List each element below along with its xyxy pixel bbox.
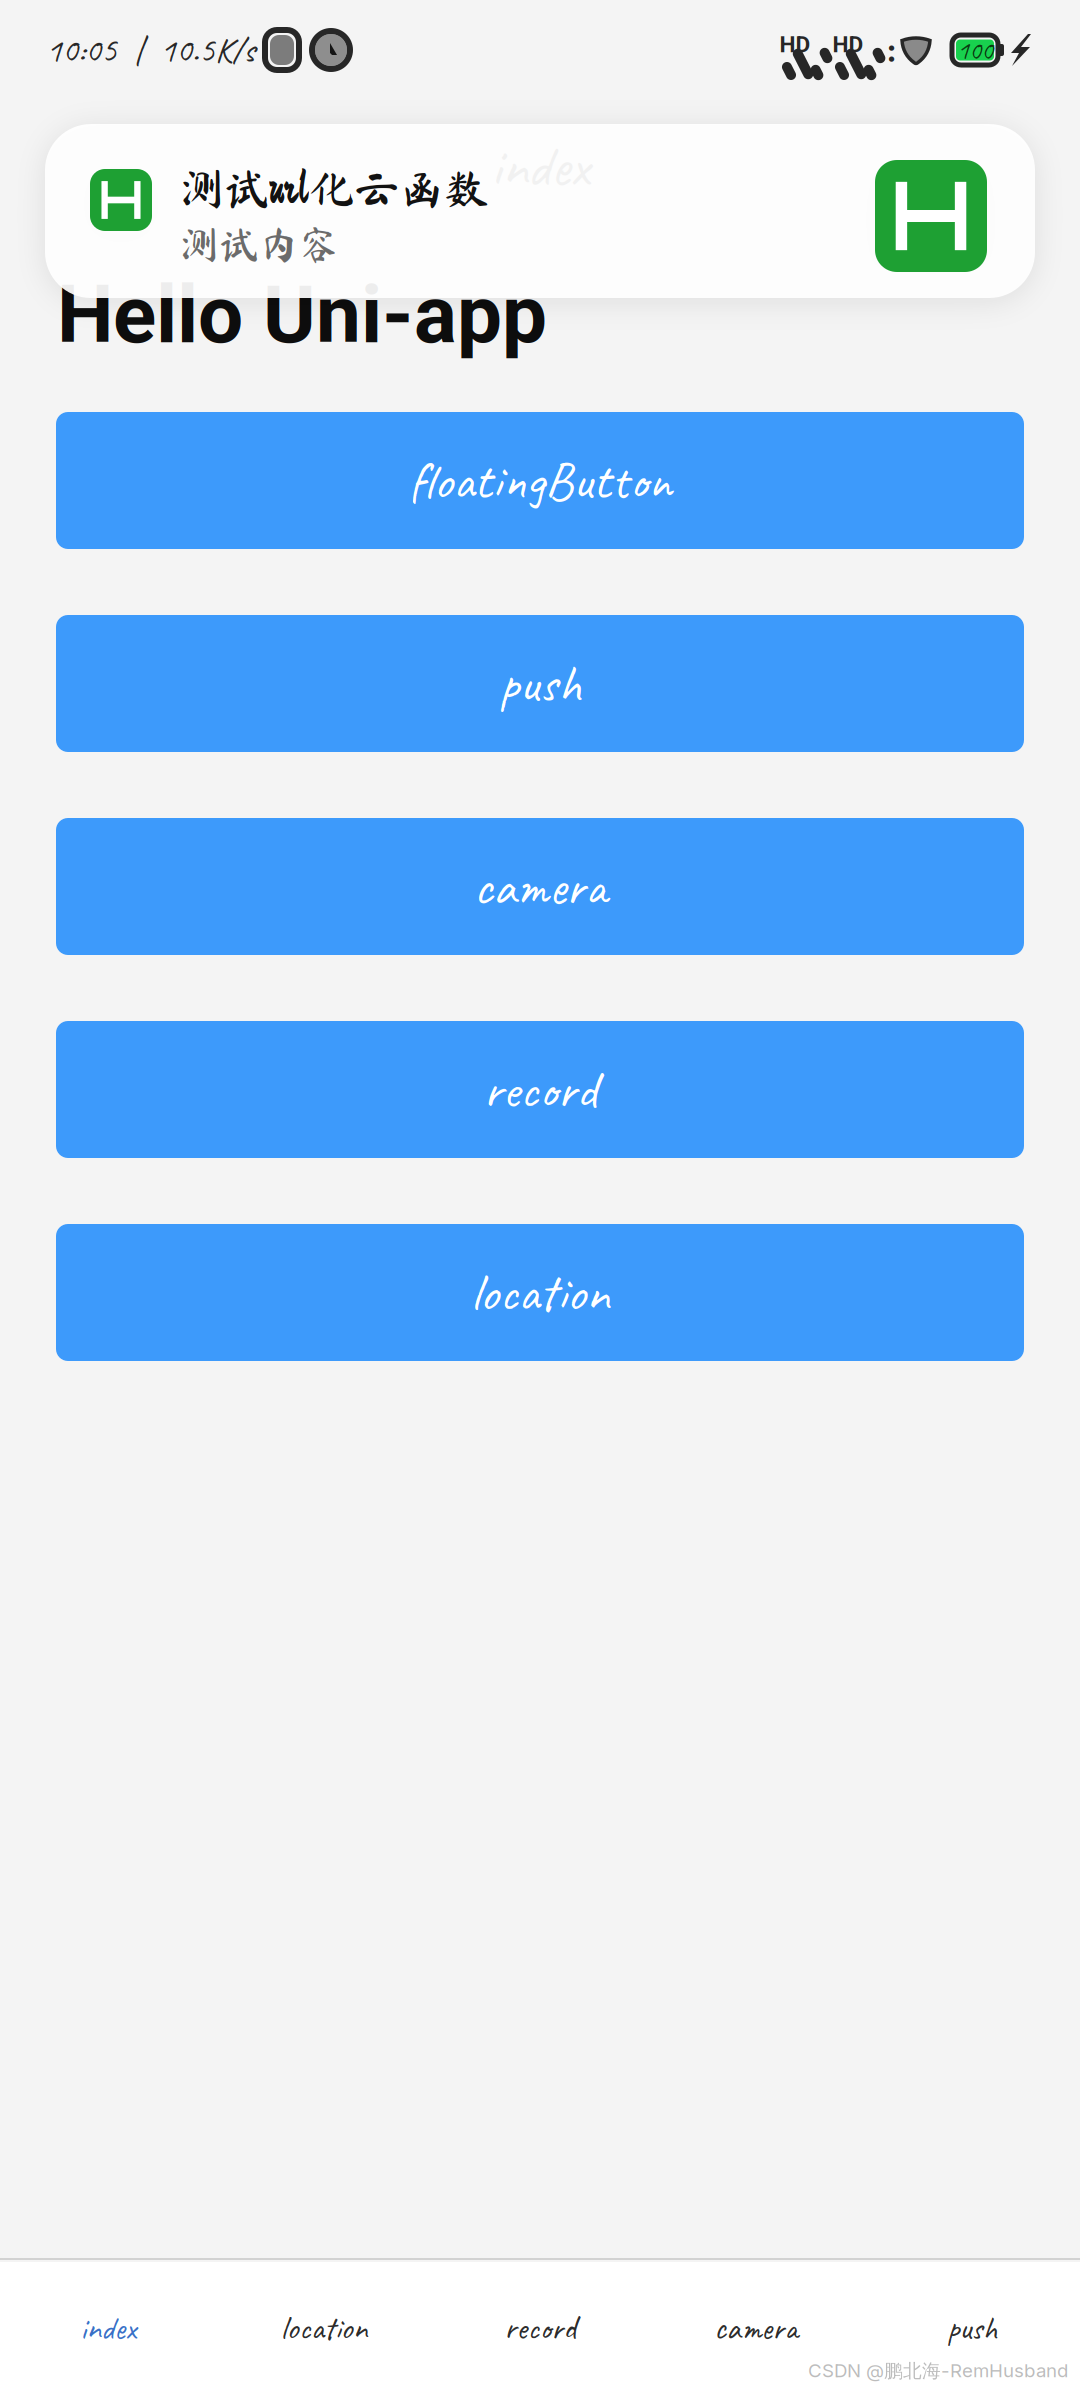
staticText: record: [504, 2307, 576, 2349]
staticText: HD: [832, 31, 863, 58]
button[interactable]: 测试url化云函数: [45, 124, 1035, 298]
staticText: CSDN @鹏北海-RemHusband: [808, 2359, 1068, 2383]
button[interactable]: location: [216, 2256, 432, 2400]
staticText: 10:05 | 10.5K/s: [46, 28, 255, 72]
staticText: camera: [714, 2307, 798, 2349]
staticText: 测试url化云函数: [179, 165, 489, 211]
staticText: floatingButton: [408, 447, 671, 514]
staticText: push: [947, 2307, 997, 2349]
staticText: location: [280, 2307, 367, 2349]
staticText: camera: [473, 853, 606, 920]
button[interactable]: index: [0, 2256, 216, 2400]
button[interactable]: push: [864, 2256, 1080, 2400]
button[interactable]: camera: [648, 2256, 864, 2400]
button[interactable]: floatingButton: [56, 412, 1024, 549]
button[interactable]: record: [56, 1021, 1024, 1158]
staticText: location: [470, 1259, 609, 1326]
button[interactable]: push: [56, 615, 1024, 752]
staticText: Hello Uni-app: [57, 268, 547, 362]
staticText: index: [80, 2307, 136, 2349]
staticText: 测试内容: [179, 224, 339, 264]
staticText: index: [490, 129, 589, 203]
staticText: push: [499, 650, 581, 717]
staticText: 100: [957, 33, 993, 67]
staticText: :: [887, 31, 896, 69]
staticText: HD: [779, 31, 810, 58]
button[interactable]: record: [432, 2256, 648, 2400]
button[interactable]: location: [56, 1224, 1024, 1361]
staticText: record: [483, 1056, 597, 1123]
button[interactable]: camera: [56, 818, 1024, 955]
